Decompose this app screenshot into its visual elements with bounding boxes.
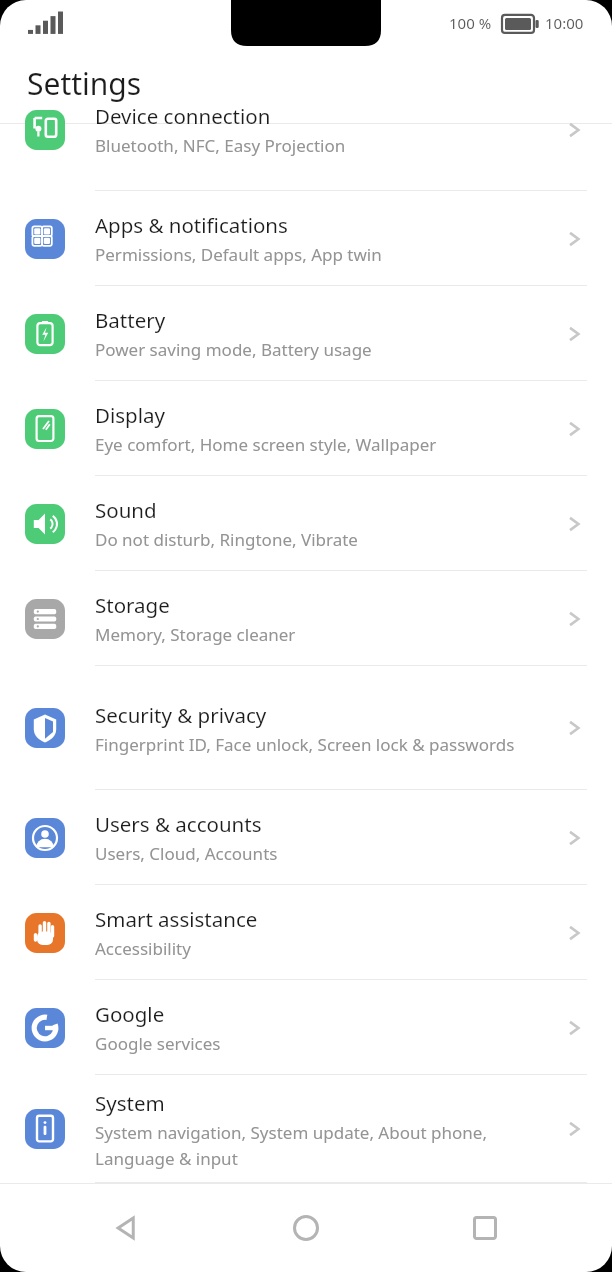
staticText: Users & accounts [95,810,262,838]
button[interactable]: Storage [0,571,612,666]
staticText: Memory, Storage cleaner [95,623,296,646]
staticText: Settings [27,63,142,104]
staticText: Security & privacy [95,701,267,729]
staticText: Storage [95,591,170,619]
button[interactable]: Users & accounts [0,790,612,885]
staticText: Battery [95,306,166,334]
button[interactable]: Display [0,381,612,476]
staticText: Display [95,401,165,429]
button[interactable]: System [0,1075,612,1183]
staticText: 100 % [449,13,492,33]
button[interactable]: Apps & notifications [0,191,612,286]
staticText: Apps & notifications [95,211,288,239]
button[interactable]: Smart assistance [0,885,612,980]
staticText: System navigation, System update, About … [95,1121,542,1170]
staticText: Bluetooth, NFC, Easy Projection [95,134,346,157]
staticText: Accessibility [95,937,191,960]
button[interactable]: Back [96,1197,158,1259]
button[interactable]: Google [0,980,612,1075]
staticText: Fingerprint ID, Face unlock, Screen lock… [95,733,515,756]
button[interactable]: Device connection [0,124,612,191]
staticText: Users, Cloud, Accounts [95,842,278,865]
staticText: Eye comfort, Home screen style, Wallpape… [95,433,437,456]
button[interactable]: Home [275,1197,337,1259]
staticText: System [95,1089,165,1117]
staticText: Google [95,1000,165,1028]
staticText: Device connection [95,102,271,130]
staticText: Smart assistance [95,905,258,933]
staticText: Power saving mode, Battery usage [95,338,372,361]
staticText: Do not disturb, Ringtone, Vibrate [95,528,358,551]
staticText: Sound [95,496,157,524]
button[interactable]: Battery [0,286,612,381]
staticText: Permissions, Default apps, App twin [95,243,382,266]
button[interactable]: Security & privacy [0,666,612,790]
staticText: Google services [95,1032,221,1055]
button[interactable]: Recents [454,1197,516,1259]
button[interactable]: Sound [0,476,612,571]
staticText: 10:00 [545,13,584,33]
